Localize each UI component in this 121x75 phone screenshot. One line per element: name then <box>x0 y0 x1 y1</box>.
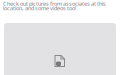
staticText: Check out pictures from associates at th… <box>3 0 106 11</box>
button[interactable]: Media <box>4 23 116 75</box>
